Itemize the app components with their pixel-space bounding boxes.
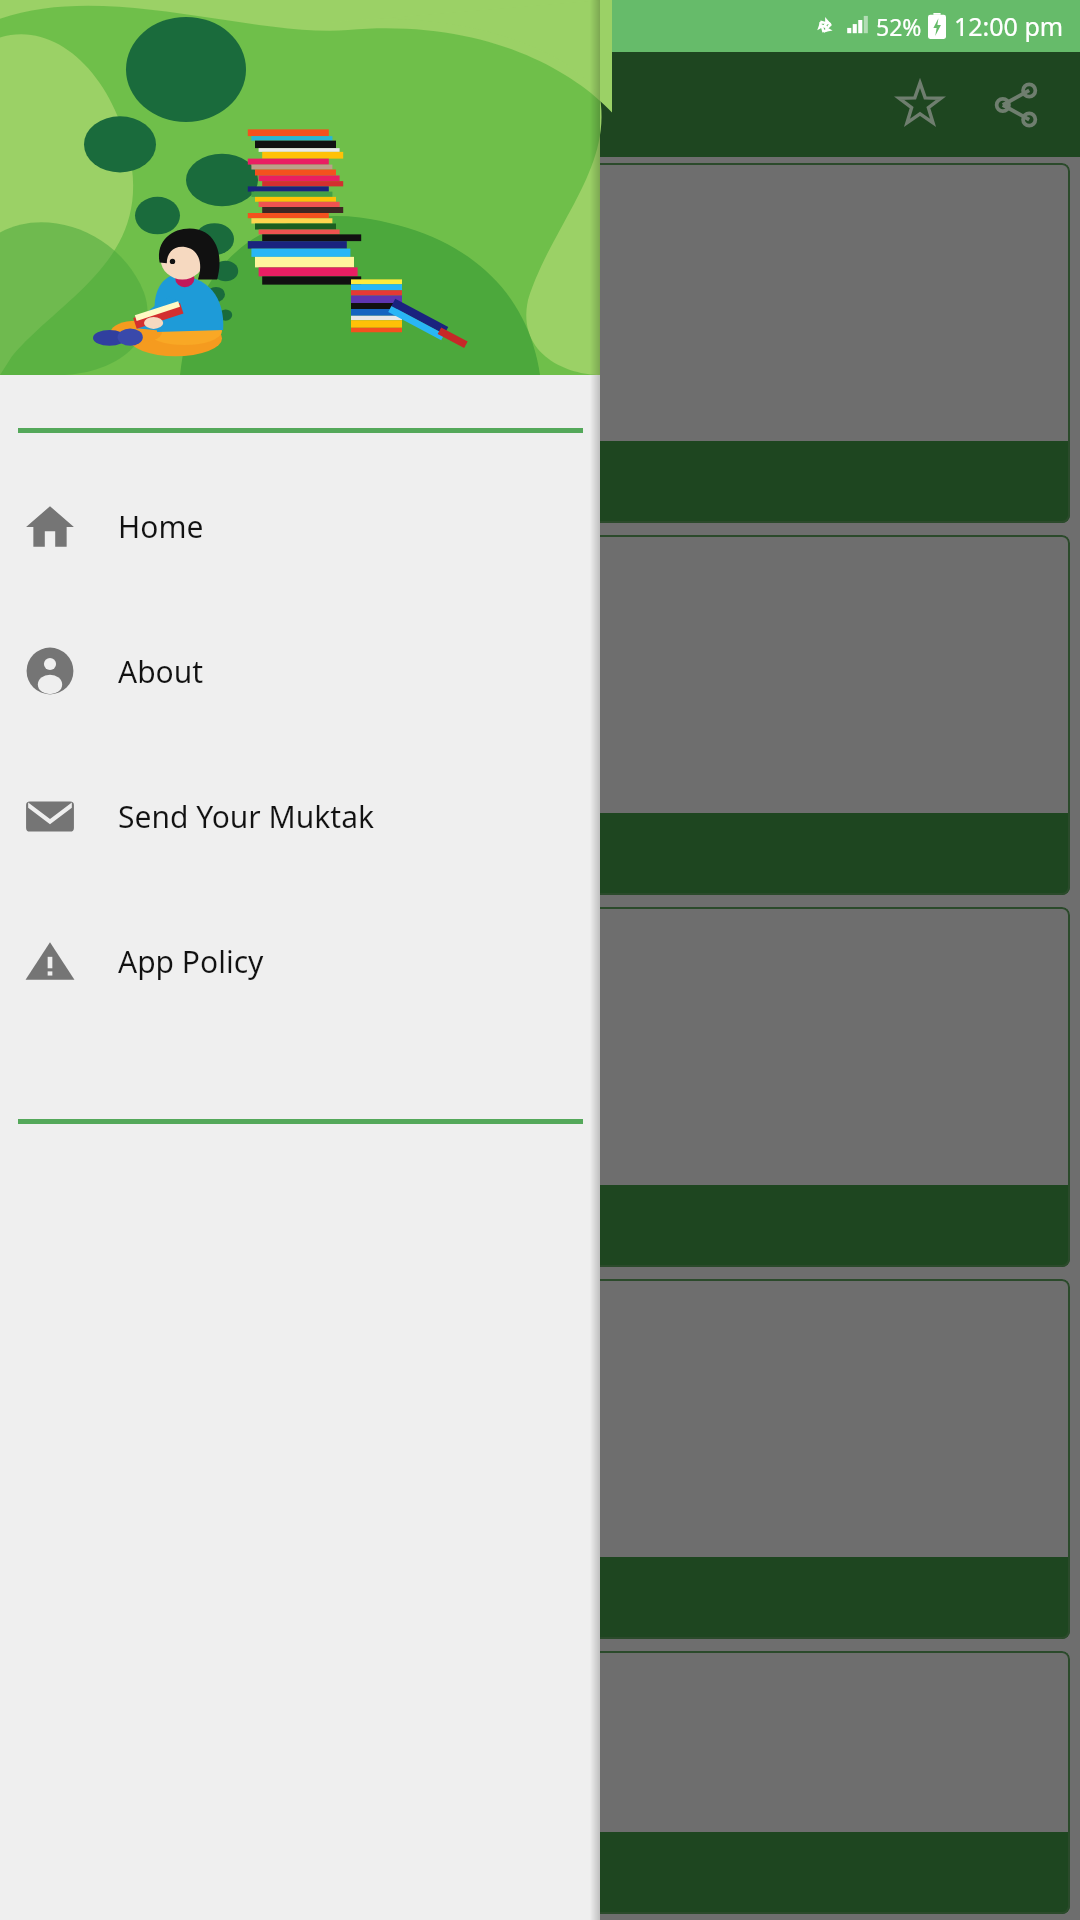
button[interactable] [10,907,1070,1267]
button[interactable] [10,535,1070,895]
button[interactable] [10,1651,1070,1914]
button[interactable]: About [0,645,600,697]
button[interactable]: Share [968,57,1064,153]
staticText: About [118,651,204,692]
staticText: App Policy [118,941,264,982]
button[interactable]: Home [0,500,600,552]
button[interactable]: Favourite [872,57,968,153]
staticText: 12:00 pm [954,9,1064,43]
staticText: Home [118,506,204,547]
staticText: Send Your Muktak [118,796,374,837]
button[interactable]: App Policy [0,935,600,987]
staticText: 52% [876,11,922,42]
button[interactable]: Send Your Muktak [0,790,600,842]
button[interactable] [10,1279,1070,1639]
button[interactable] [10,163,1070,523]
